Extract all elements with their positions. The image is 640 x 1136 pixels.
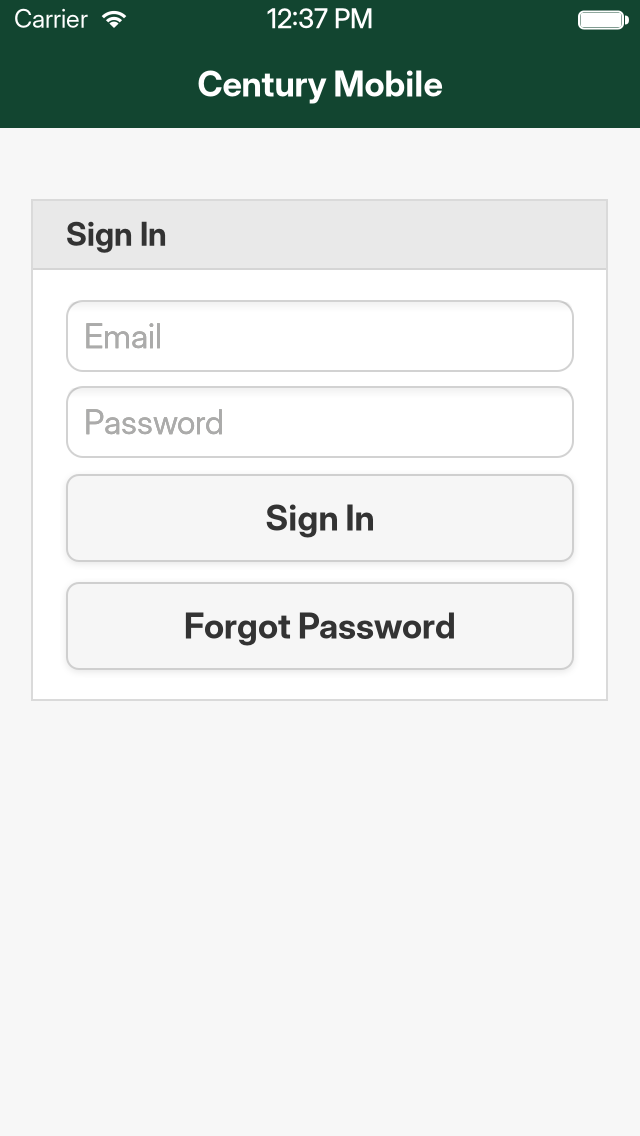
staticText: Sign In [66, 215, 167, 253]
staticText: Password [84, 402, 224, 442]
staticText: Email [84, 316, 162, 356]
button[interactable]: Forgot Password [66, 582, 574, 670]
staticText: 12:37 PM [267, 3, 373, 34]
textField[interactable]: Email [84, 316, 574, 356]
staticText: Sign In [265, 498, 374, 538]
button[interactable]: Sign In [66, 474, 574, 562]
staticText: Century Mobile [197, 64, 442, 104]
staticText: Forgot Password [184, 606, 456, 646]
textField[interactable]: Password [84, 402, 574, 442]
staticText: Password [84, 402, 224, 442]
staticText: Email [84, 316, 162, 356]
staticText: Carrier [14, 4, 88, 33]
